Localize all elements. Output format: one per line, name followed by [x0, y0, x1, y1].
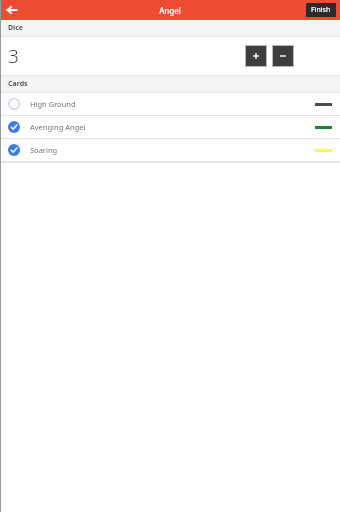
button[interactable]: High Ground — [0, 93, 340, 115]
staticText: Dice — [8, 23, 24, 33]
staticText: Finish — [311, 5, 331, 15]
button[interactable]: Increase — [246, 46, 266, 66]
staticText: High Ground — [30, 99, 76, 109]
button[interactable]: Back — [4, 2, 20, 18]
staticText: Soaring — [30, 145, 58, 155]
button[interactable]: Decrease — [273, 46, 293, 66]
staticText: 3 — [8, 43, 19, 69]
staticText: Angel — [159, 5, 181, 16]
button[interactable]: Soaring — [0, 139, 340, 161]
button[interactable]: Avenging Angel — [0, 116, 340, 138]
staticText: Avenging Angel — [30, 122, 86, 132]
button[interactable]: Finish — [306, 3, 336, 17]
staticText: Cards — [8, 79, 28, 89]
